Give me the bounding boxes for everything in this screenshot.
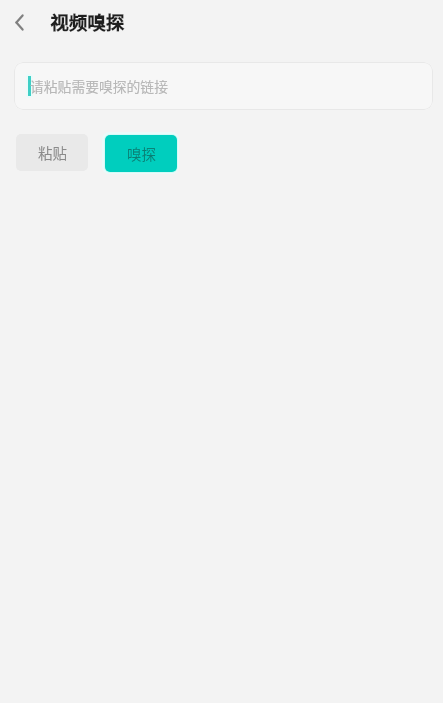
button[interactable]: Back: [0, 0, 44, 46]
staticText: 粘贴: [38, 142, 67, 163]
staticText: 请粘贴需要嗅探的链接: [30, 76, 168, 96]
button[interactable]: 嗅探: [105, 135, 177, 172]
button[interactable]: 请粘贴需要嗅探的链接: [14, 62, 433, 110]
staticText: 嗅探: [127, 143, 156, 164]
staticText: 视频嗅探: [50, 9, 125, 36]
button[interactable]: 粘贴: [16, 134, 88, 171]
